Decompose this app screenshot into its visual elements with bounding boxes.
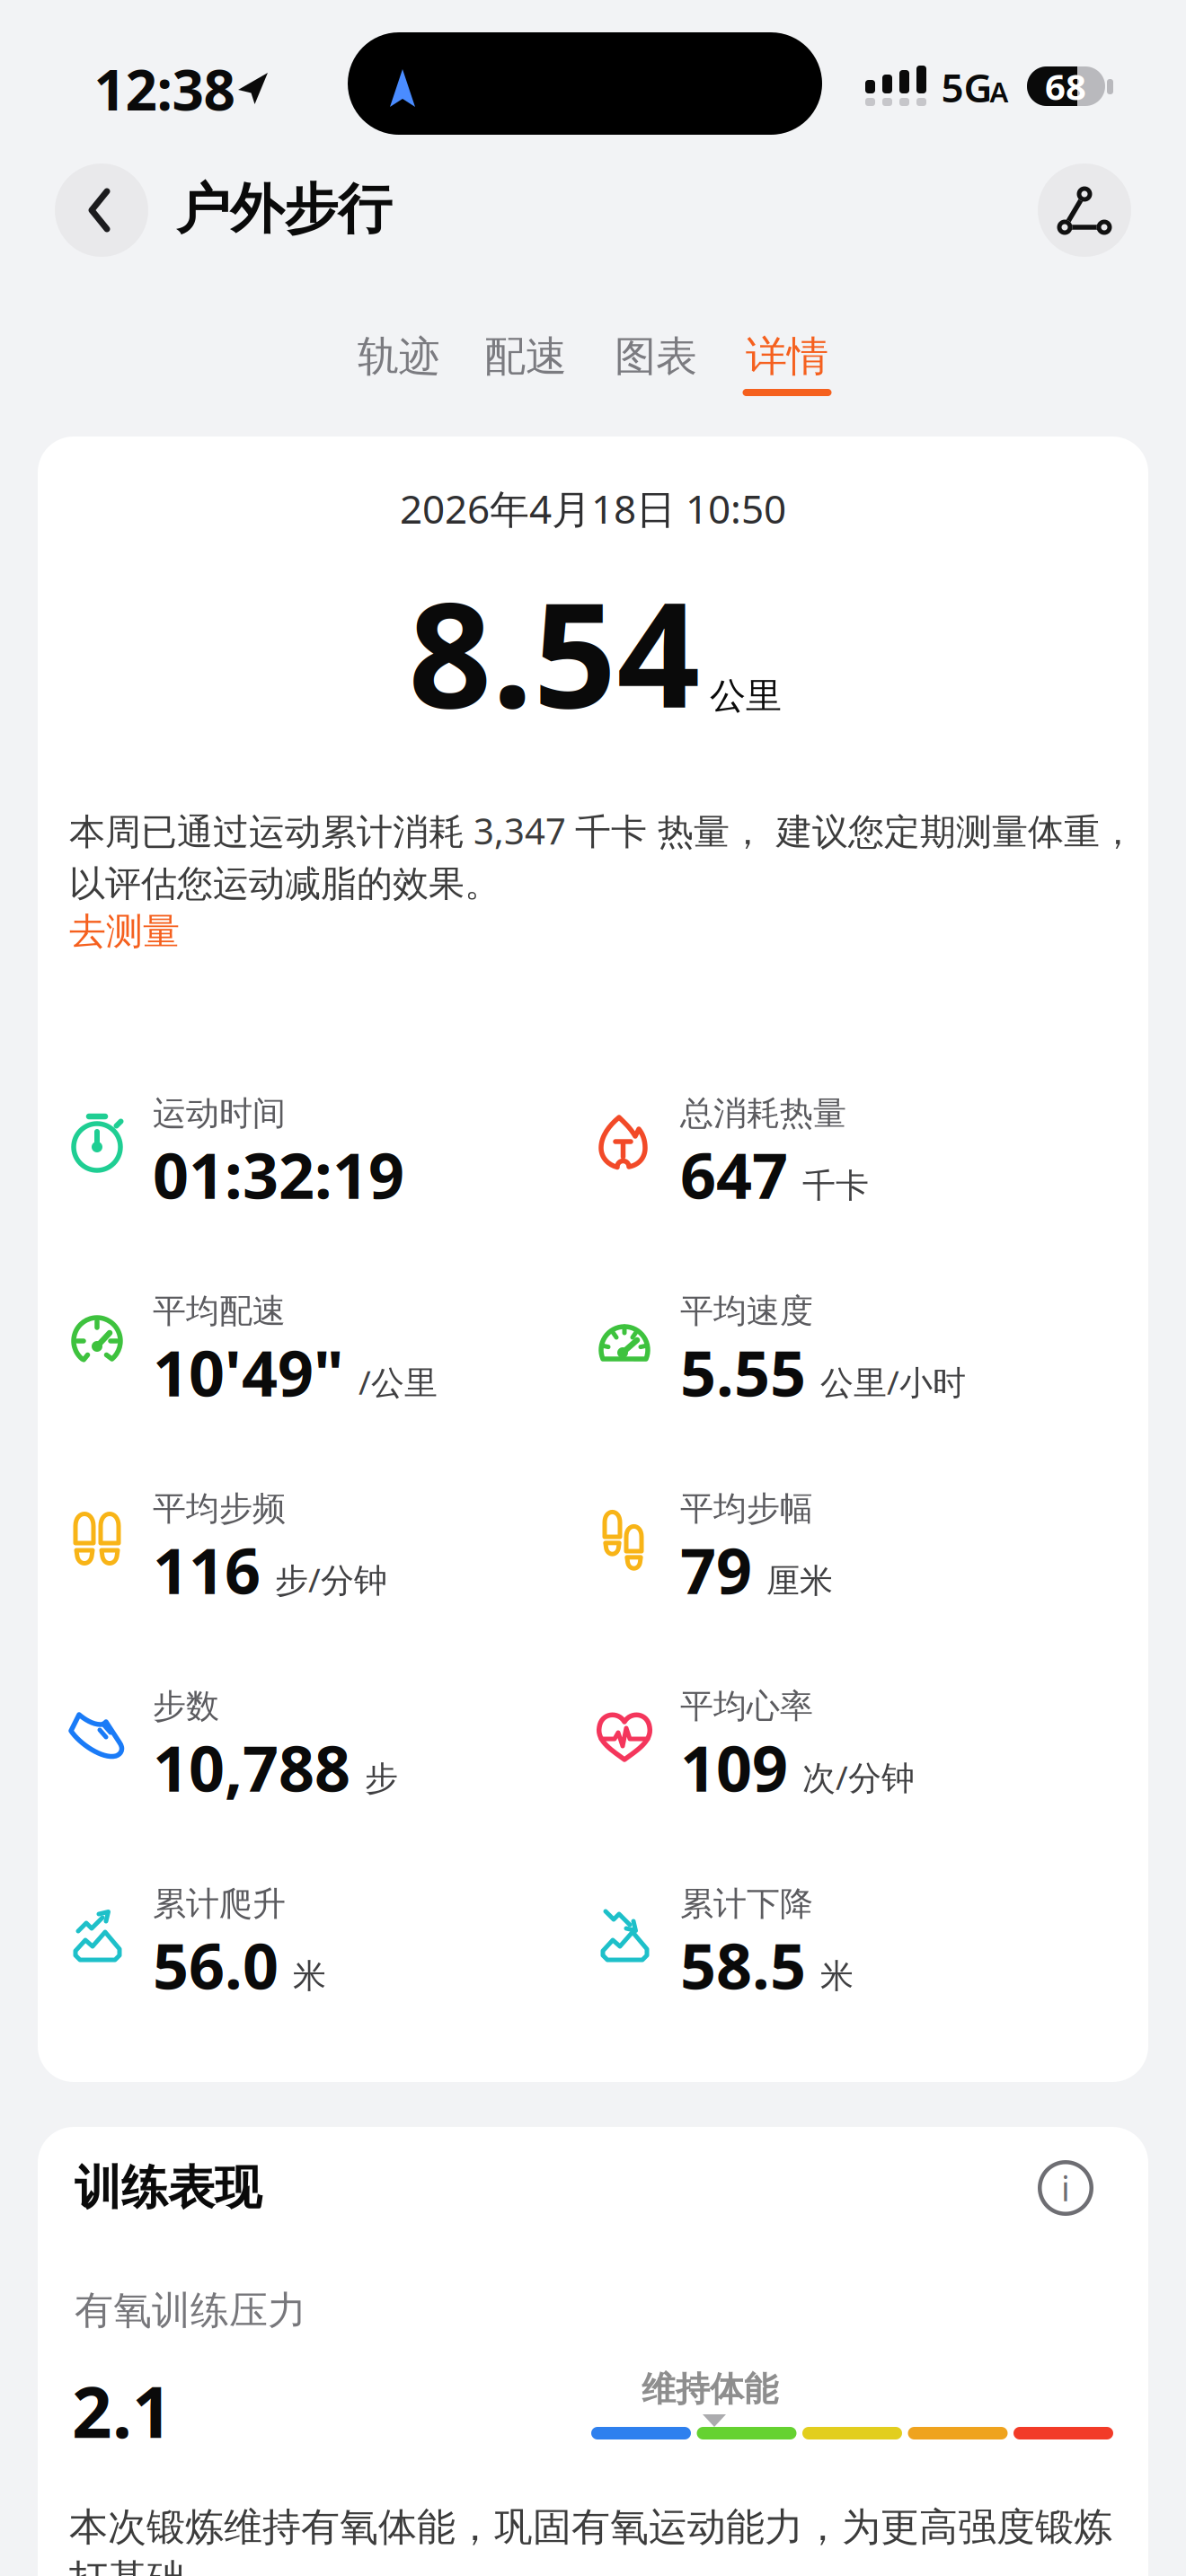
staticText: 图表 — [615, 331, 697, 382]
staticText: 2026年4月18日 10:50 — [400, 482, 786, 535]
staticText: 平均步频 — [153, 1488, 286, 1529]
staticText: 109 — [680, 1725, 788, 1809]
staticText: 厘米 — [766, 1561, 833, 1601]
button[interactable] — [55, 163, 148, 257]
staticText: 58.5 — [680, 1923, 806, 2007]
staticText: 116 — [153, 1528, 261, 1611]
staticText: 有氧训练压力 — [75, 2287, 306, 2334]
button[interactable] — [1038, 163, 1131, 257]
staticText: 次/分钟 — [802, 1755, 915, 1799]
button[interactable]: 详情 — [746, 331, 828, 382]
staticText: 平均速度 — [680, 1291, 813, 1331]
staticText: 公里/小时 — [820, 1360, 966, 1404]
staticText: i — [1061, 2165, 1070, 2211]
staticText: 79 — [680, 1528, 752, 1611]
staticText: 累计下降 — [680, 1883, 813, 1924]
staticText: 轨迹 — [358, 331, 440, 382]
staticText: 详情 — [746, 331, 828, 382]
staticText: 10,788 — [153, 1725, 350, 1809]
staticText: 训练表现 — [75, 2159, 261, 2217]
staticText: 米 — [820, 1956, 854, 1997]
staticText: 千卡 — [802, 1165, 869, 1206]
staticText: 56.0 — [153, 1923, 279, 2007]
button[interactable]: 去测量 — [69, 909, 180, 954]
staticText: 5.55 — [680, 1330, 806, 1414]
button[interactable]: 配速 — [484, 331, 567, 382]
staticText: 8.54 — [408, 555, 700, 748]
staticText: 公里 — [710, 674, 782, 718]
staticText: 去测量 — [69, 909, 180, 954]
staticText: 01:32:19 — [153, 1133, 404, 1216]
staticText: 米 — [293, 1956, 326, 1997]
staticText: 步/分钟 — [275, 1557, 387, 1601]
staticText: 647 — [680, 1133, 788, 1216]
staticText: 总消耗热量 — [680, 1093, 846, 1134]
staticText: A — [990, 73, 1009, 110]
staticText: 维持体能 — [642, 2368, 778, 2410]
staticText: 平均心率 — [680, 1686, 813, 1727]
staticText: 平均步幅 — [680, 1488, 813, 1529]
button[interactable]: i — [1038, 2160, 1093, 2216]
button[interactable]: 图表 — [615, 331, 697, 382]
staticText: 累计爬升 — [153, 1883, 286, 1924]
staticText: 步数 — [153, 1686, 219, 1727]
staticText: 运动时间 — [153, 1093, 286, 1134]
staticText: 本次锻炼维持有氧体能，巩固有氧运动能力，为更高强度锻炼 打基础 — [69, 2501, 1112, 2576]
staticText: 户外步行 — [176, 176, 392, 242]
staticText: 5G — [941, 61, 992, 113]
staticText: 步 — [365, 1758, 398, 1799]
staticText: 10'49" — [153, 1330, 344, 1414]
staticText: 本周已通过运动累计消耗 3,347 千卡 热量， 建议您定期测量体重， 以评估您… — [69, 803, 1136, 909]
staticText: 2.1 — [72, 2364, 173, 2457]
staticText: 68 — [1045, 62, 1086, 110]
staticText: 配速 — [484, 331, 567, 382]
staticText: 12:38 — [94, 52, 235, 126]
button[interactable]: 轨迹 — [358, 331, 440, 382]
staticText: /公里 — [358, 1360, 438, 1404]
staticText: 平均配速 — [153, 1291, 286, 1331]
